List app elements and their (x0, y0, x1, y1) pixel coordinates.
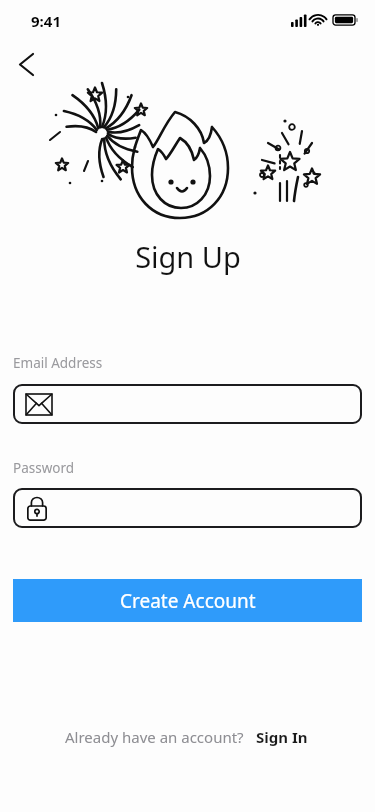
staticText: Create Account (120, 588, 256, 614)
staticText: Password (13, 459, 75, 477)
staticText: Already have an account? (65, 727, 244, 747)
button[interactable]: Sign In (254, 723, 310, 751)
staticText: 9:41 (31, 11, 61, 31)
staticText: Sign In (256, 727, 308, 747)
staticText: Email Address (13, 354, 103, 372)
button[interactable] (13, 384, 362, 424)
staticText: Sign Up (135, 237, 241, 276)
button[interactable]: Create Account (13, 579, 362, 622)
button[interactable]: Back (8, 46, 44, 82)
button[interactable] (13, 488, 362, 528)
